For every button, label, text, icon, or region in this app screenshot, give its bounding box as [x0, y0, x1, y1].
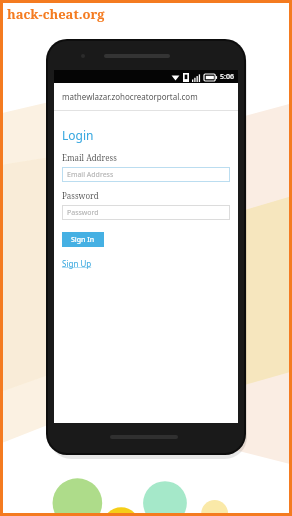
- staticText: Email Address: [62, 152, 117, 163]
- staticText: Login: [62, 127, 94, 143]
- button[interactable]: Email Address: [62, 167, 230, 182]
- staticText: 5:06: [220, 72, 234, 82]
- staticText: Password: [62, 190, 99, 201]
- button[interactable]: Sign In: [62, 232, 104, 247]
- staticText: mathewlazar.zohocreatorportal.com: [62, 91, 198, 102]
- staticText: Password: [67, 208, 99, 218]
- staticText: hack-cheat.org: [7, 5, 105, 23]
- staticText: Email Address: [67, 170, 114, 180]
- staticText: Sign In: [71, 235, 95, 245]
- staticText: Sign Up: [62, 258, 92, 269]
- button[interactable]: Sign Up: [62, 258, 92, 269]
- button[interactable]: Password: [62, 205, 230, 220]
- button[interactable]: mathewlazar.zohocreatorportal.com: [54, 83, 238, 110]
